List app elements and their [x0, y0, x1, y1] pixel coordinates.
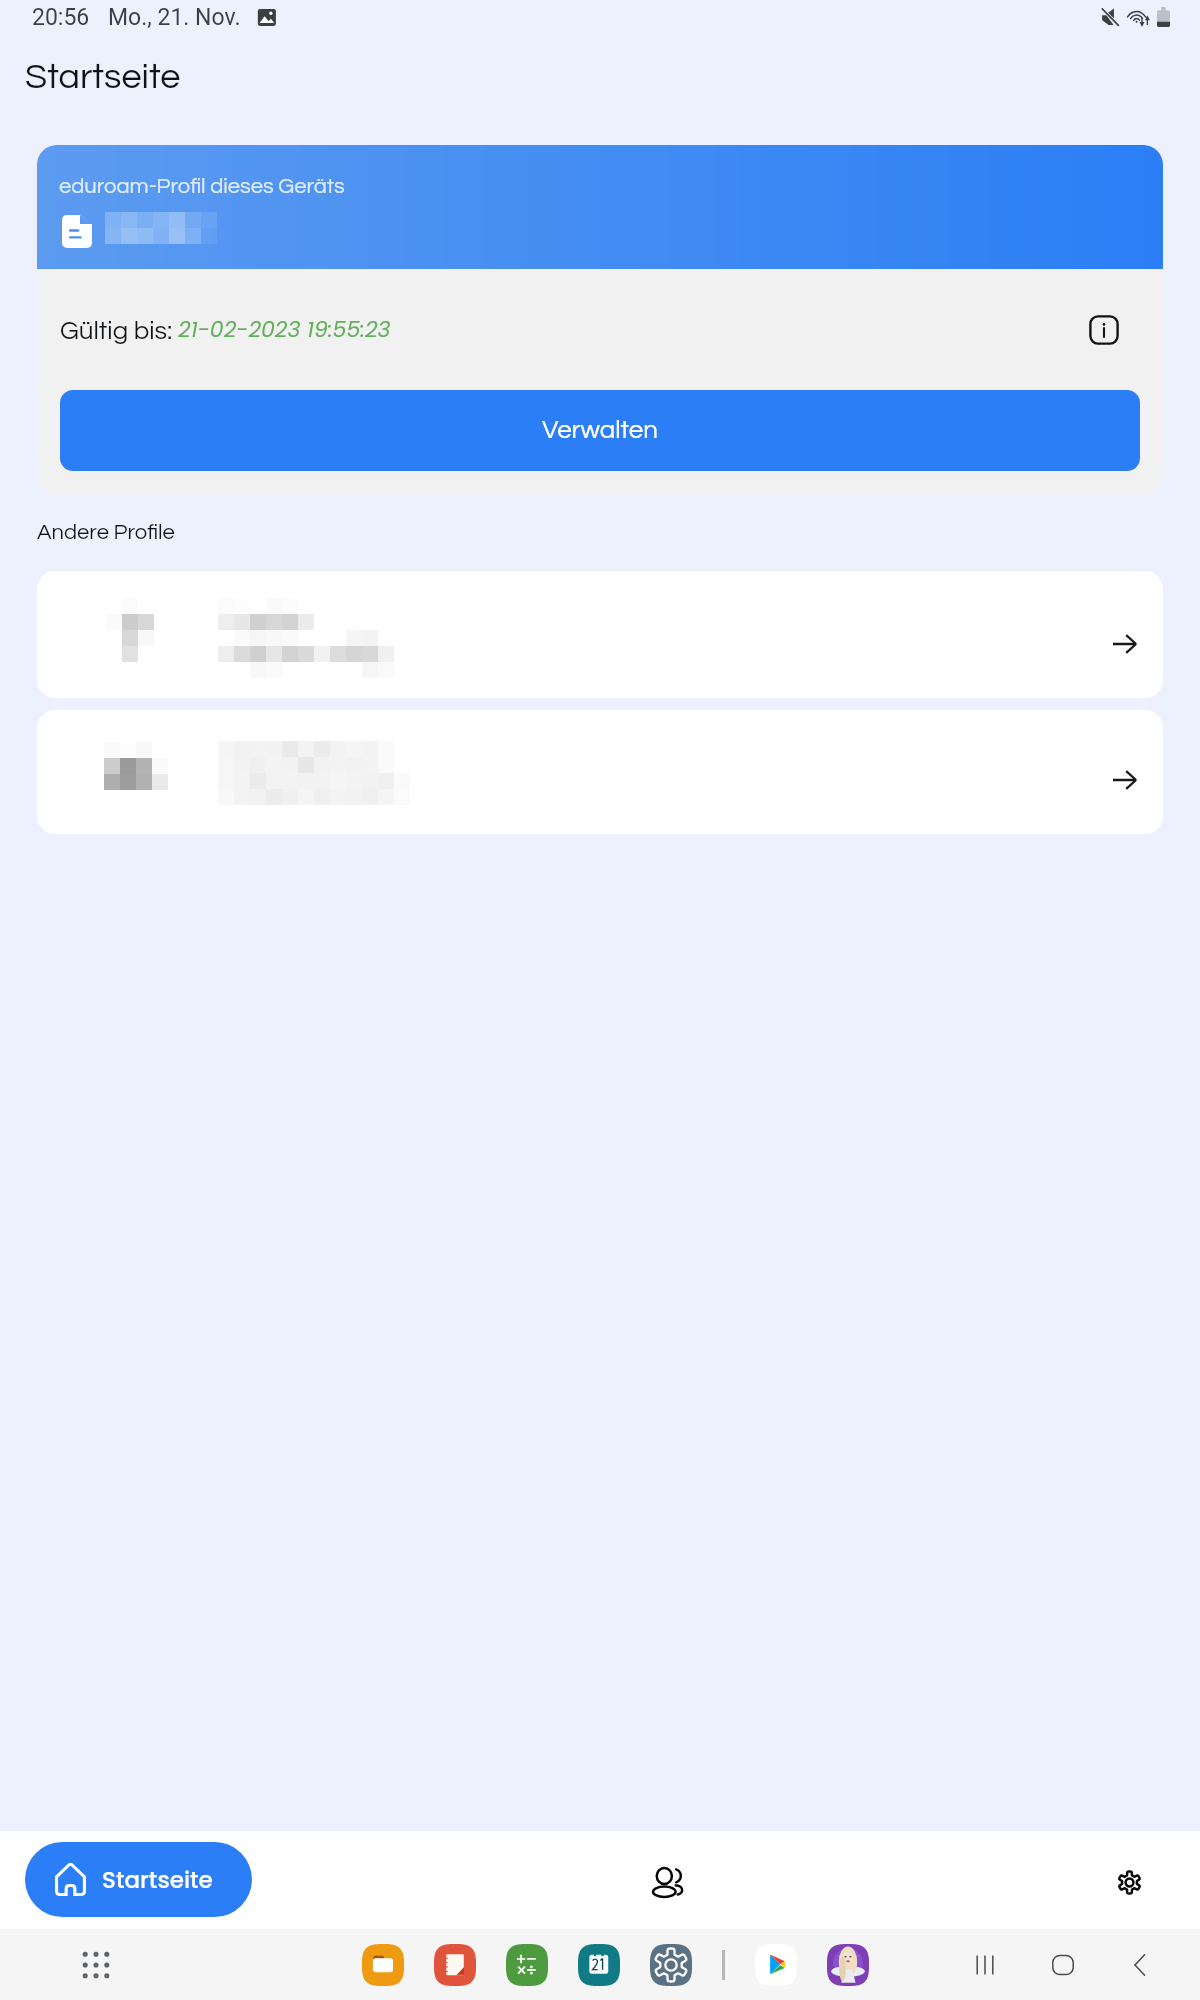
button[interactable]: Recents [954, 1934, 1016, 1996]
button[interactable]: Settings [650, 1944, 692, 1986]
button[interactable]: All apps [72, 1941, 120, 1989]
button[interactable]: Settings [1094, 1847, 1164, 1917]
staticText: eduroam-Profil dieses Geräts [59, 175, 345, 198]
staticText: Startseite [25, 58, 181, 95]
button[interactable]: Play Store [755, 1944, 797, 1986]
staticText: Verwalten [542, 417, 658, 444]
staticText: Andere Profile [37, 521, 175, 544]
button[interactable]: Profile [632, 1846, 704, 1918]
button[interactable]: Files [362, 1944, 404, 1986]
button[interactable] [37, 710, 1163, 834]
button[interactable]: Back [1110, 1934, 1172, 1996]
button[interactable]: Info [1084, 310, 1124, 350]
staticText: Mo., 21. Nov. [108, 4, 241, 31]
button[interactable]: Verwalten [60, 390, 1140, 471]
button[interactable]: Calendar [578, 1944, 620, 1986]
button[interactable]: Game [827, 1944, 869, 1986]
button[interactable]: Home [1032, 1934, 1094, 1996]
button[interactable]: Notes [434, 1944, 476, 1986]
button[interactable] [37, 571, 1163, 698]
button[interactable]: Calculator [506, 1944, 548, 1986]
staticText: Startseite [102, 1864, 213, 1896]
staticText: 20:56 [32, 4, 90, 31]
staticText: 21-02-2023 19:55:23 [178, 314, 391, 345]
button[interactable]: Startseite [25, 1842, 252, 1917]
staticText: Gültig bis: [60, 318, 178, 345]
